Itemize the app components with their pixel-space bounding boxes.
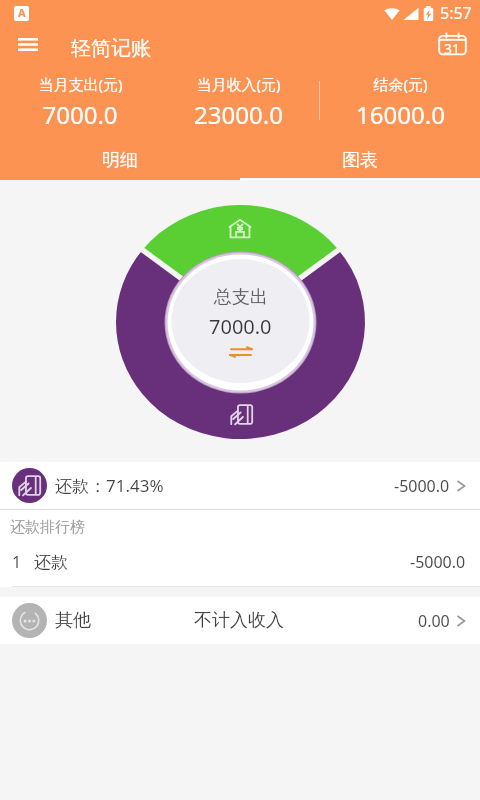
- button[interactable]: 明细: [0, 144, 240, 180]
- staticText: 5:57: [440, 2, 472, 24]
- staticText: 当月收入(元): [196, 74, 281, 94]
- button[interactable]: 其他: [0, 597, 480, 644]
- staticText: 结余(元): [373, 74, 428, 94]
- button[interactable]: 图表: [240, 144, 480, 180]
- staticText: A: [18, 6, 26, 20]
- staticText: 图表: [342, 149, 378, 172]
- staticText: 7000.0: [209, 313, 272, 340]
- button[interactable]: 1: [0, 544, 480, 580]
- staticText: 轻简记账: [71, 36, 151, 61]
- staticText: -5000.0: [394, 475, 450, 497]
- staticText: 7000.0: [42, 98, 118, 131]
- button[interactable]: Calendar: [430, 26, 474, 70]
- staticText: 16000.0: [356, 98, 445, 131]
- staticText: -5000.0: [410, 551, 466, 573]
- staticText: 明细: [102, 149, 138, 172]
- staticText: 还款排行榜: [10, 518, 85, 537]
- button[interactable]: 还款：71.43%: [0, 462, 480, 509]
- staticText: 1: [12, 551, 22, 573]
- staticText: 0.00: [418, 610, 450, 632]
- staticText: 31: [444, 39, 461, 58]
- staticText: 23000.0: [194, 98, 283, 131]
- staticText: 不计入收入: [194, 609, 284, 632]
- staticText: 当月支出(元): [38, 74, 123, 94]
- staticText: 其他: [55, 609, 91, 632]
- button[interactable]: Menu: [6, 26, 50, 70]
- staticText: 还款: [34, 552, 68, 573]
- staticText: 还款：71.43%: [55, 474, 164, 497]
- staticText: 总支出: [214, 286, 268, 309]
